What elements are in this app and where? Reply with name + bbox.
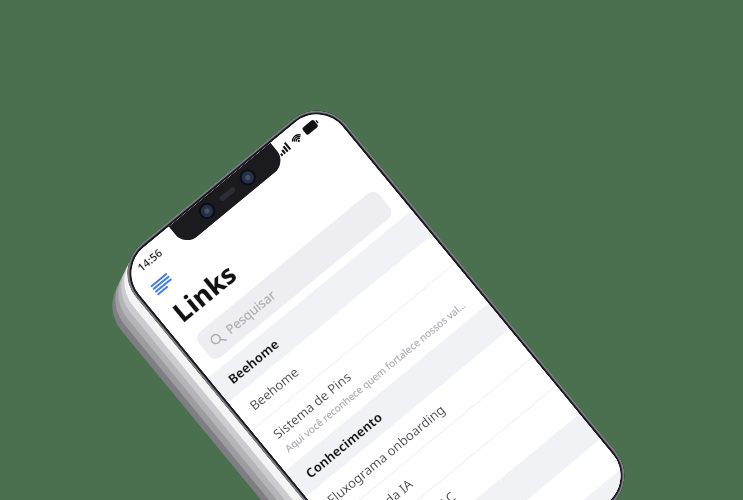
- staticText: Pesquisar: [222, 286, 279, 338]
- button[interactable]: Sistema de Pins: [252, 263, 489, 471]
- button[interactable]: Interno: [420, 468, 634, 500]
- button[interactable]: Menu: [148, 267, 179, 298]
- button[interactable]: Pesquisar: [193, 188, 395, 362]
- button[interactable]: Conhecimento: [286, 304, 510, 497]
- button[interactable]: Beehome: [228, 235, 455, 431]
- staticText: Beehome: [246, 363, 303, 414]
- staticText: Links: [164, 255, 244, 330]
- button[interactable]: Código de Conduta: [397, 439, 623, 500]
- staticText: Futuro da IA: [347, 475, 417, 500]
- button[interactable]: Fluxograma onboarding: [306, 329, 532, 500]
- button[interactable]: Beehome: [208, 210, 432, 403]
- staticText: 14:56: [134, 244, 166, 274]
- staticText: Treinamento C.C: [370, 487, 460, 500]
- button[interactable]: Treinamento C.C: [353, 386, 580, 500]
- staticText: Aqui você reconhece quem fortalece nosso…: [282, 295, 471, 455]
- staticText: Fluxograma onboarding: [323, 400, 449, 500]
- staticText: Conhecimento: [302, 408, 386, 482]
- staticText: Beehome: [224, 334, 283, 388]
- button[interactable]: Ética & Compliance: [376, 415, 601, 500]
- button[interactable]: Futuro da IA: [329, 358, 556, 500]
- staticText: Sistema de Pins: [269, 368, 355, 443]
